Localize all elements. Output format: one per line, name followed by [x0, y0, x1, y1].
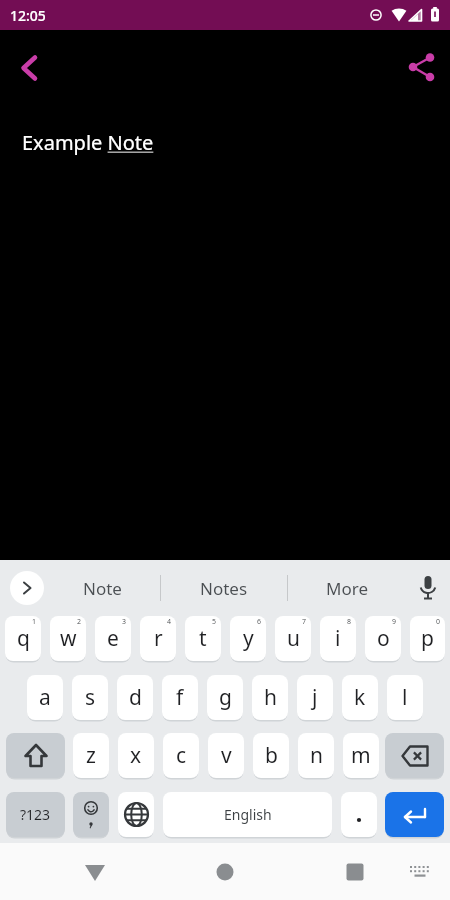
- button[interactable]: r: [140, 616, 176, 661]
- button[interactable]: a: [27, 675, 63, 720]
- staticText: 0: [436, 617, 441, 627]
- staticText: i: [335, 624, 341, 653]
- button[interactable]: [118, 792, 154, 837]
- staticText: c: [176, 741, 187, 770]
- staticText: y: [243, 624, 254, 653]
- button[interactable]: t: [185, 616, 221, 661]
- button[interactable]: o: [365, 616, 401, 661]
- staticText: b: [265, 741, 278, 770]
- staticText: a: [39, 683, 51, 712]
- button[interactable]: p: [410, 616, 445, 661]
- staticText: o: [377, 624, 390, 653]
- staticText: t: [199, 624, 207, 653]
- button[interactable]: [78, 855, 112, 889]
- button[interactable]: Notes: [161, 560, 287, 616]
- button[interactable]: x: [118, 733, 154, 778]
- staticText: f: [176, 683, 184, 712]
- button[interactable]: s: [72, 675, 108, 720]
- staticText: x: [130, 741, 142, 770]
- button[interactable]: h: [252, 675, 288, 720]
- staticText: 2: [77, 617, 82, 627]
- staticText: q: [17, 624, 30, 653]
- staticText: 6: [257, 617, 262, 627]
- button[interactable]: q: [5, 616, 41, 661]
- button[interactable]: w: [50, 616, 86, 661]
- staticText: l: [402, 683, 408, 712]
- button[interactable]: [385, 792, 444, 837]
- button[interactable]: [10, 571, 44, 605]
- staticText: 12:05: [10, 6, 46, 25]
- button[interactable]: [341, 792, 377, 837]
- button[interactable]: e: [95, 616, 131, 661]
- button[interactable]: [385, 733, 444, 778]
- staticText: 7: [302, 617, 307, 627]
- staticText: e: [107, 624, 119, 653]
- button[interactable]: [208, 855, 242, 889]
- staticText: k: [354, 683, 366, 712]
- staticText: 5: [212, 617, 217, 627]
- button[interactable]: ?123: [6, 792, 65, 837]
- button[interactable]: [6, 733, 65, 778]
- staticText: v: [221, 741, 232, 770]
- staticText: j: [312, 683, 318, 712]
- button[interactable]: d: [117, 675, 153, 720]
- staticText: s: [85, 683, 96, 712]
- staticText: 9: [392, 617, 397, 627]
- button[interactable]: [405, 560, 450, 616]
- button[interactable]: f: [162, 675, 198, 720]
- button[interactable]: v: [208, 733, 244, 778]
- button[interactable]: y: [230, 616, 266, 661]
- button[interactable]: m: [343, 733, 379, 778]
- button[interactable]: [12, 50, 48, 86]
- staticText: 8: [347, 617, 352, 627]
- staticText: r: [154, 624, 163, 653]
- staticText: h: [264, 683, 277, 712]
- button[interactable]: j: [297, 675, 333, 720]
- staticText: z: [86, 741, 96, 770]
- staticText: Note: [83, 577, 122, 600]
- staticText: n: [310, 741, 323, 770]
- button[interactable]: [338, 855, 372, 889]
- staticText: 4: [167, 617, 172, 627]
- staticText: d: [129, 683, 142, 712]
- button[interactable]: n: [298, 733, 334, 778]
- staticText: 1: [32, 617, 37, 627]
- staticText: m: [351, 741, 371, 770]
- button[interactable]: [73, 792, 109, 837]
- staticText: g: [219, 683, 232, 712]
- button[interactable]: [403, 855, 437, 889]
- staticText: p: [421, 624, 434, 653]
- button[interactable]: u: [275, 616, 311, 661]
- staticText: English: [224, 805, 272, 824]
- button[interactable]: b: [253, 733, 289, 778]
- staticText: w: [60, 624, 77, 653]
- button[interactable]: k: [342, 675, 378, 720]
- staticText: Notes: [200, 577, 248, 600]
- button[interactable]: c: [163, 733, 199, 778]
- button[interactable]: [407, 52, 439, 84]
- staticText: More: [326, 577, 368, 600]
- staticText: u: [287, 624, 300, 653]
- button[interactable]: i: [320, 616, 356, 661]
- button[interactable]: l: [387, 675, 423, 720]
- staticText: Example Note: [22, 129, 154, 156]
- button[interactable]: English: [163, 792, 332, 837]
- button[interactable]: g: [207, 675, 243, 720]
- button[interactable]: Note: [44, 560, 160, 616]
- staticText: 3: [122, 617, 127, 627]
- button[interactable]: More: [288, 560, 405, 616]
- button[interactable]: z: [73, 733, 109, 778]
- staticText: ?123: [20, 805, 51, 824]
